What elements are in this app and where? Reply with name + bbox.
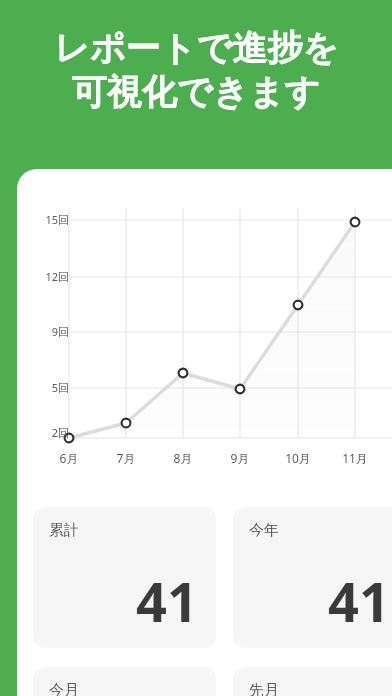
staticText: 11月	[335, 450, 375, 466]
staticText: 今年	[249, 521, 279, 540]
staticText: 41	[136, 564, 198, 638]
staticText: 10月	[278, 450, 318, 466]
staticText: 先月	[249, 681, 279, 696]
staticText: 今月	[49, 681, 79, 696]
staticText: 累計	[49, 521, 79, 540]
staticText: 15回	[31, 212, 69, 227]
staticText: 可視化できます	[0, 70, 392, 114]
staticText: 12回	[31, 269, 69, 284]
button[interactable]: 累計	[33, 507, 216, 648]
staticText: 7月	[106, 450, 146, 466]
staticText: 6月	[49, 450, 89, 466]
staticText: 5回	[31, 380, 69, 395]
staticText: 41	[328, 564, 390, 638]
button[interactable]: 今年	[233, 507, 392, 648]
button[interactable]: 今月	[33, 667, 216, 696]
staticText: 2回	[31, 425, 69, 440]
staticText: 9回	[31, 324, 69, 339]
staticText: 8月	[163, 450, 203, 466]
staticText: 9月	[220, 450, 260, 466]
button[interactable]: 先月	[233, 667, 392, 696]
staticText: レポートで進捗を	[0, 26, 392, 70]
